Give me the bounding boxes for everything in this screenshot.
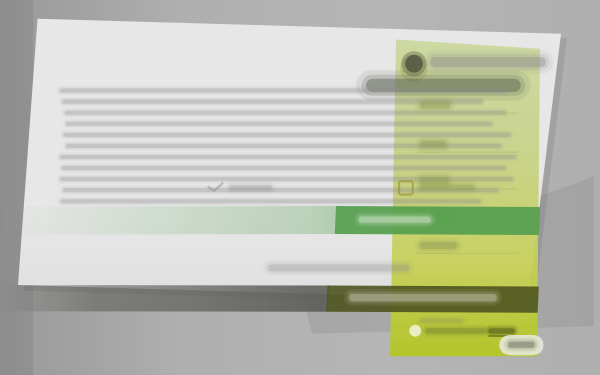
button[interactable]: Blurred cookie consent dialog screenshot bbox=[0, 0, 600, 375]
